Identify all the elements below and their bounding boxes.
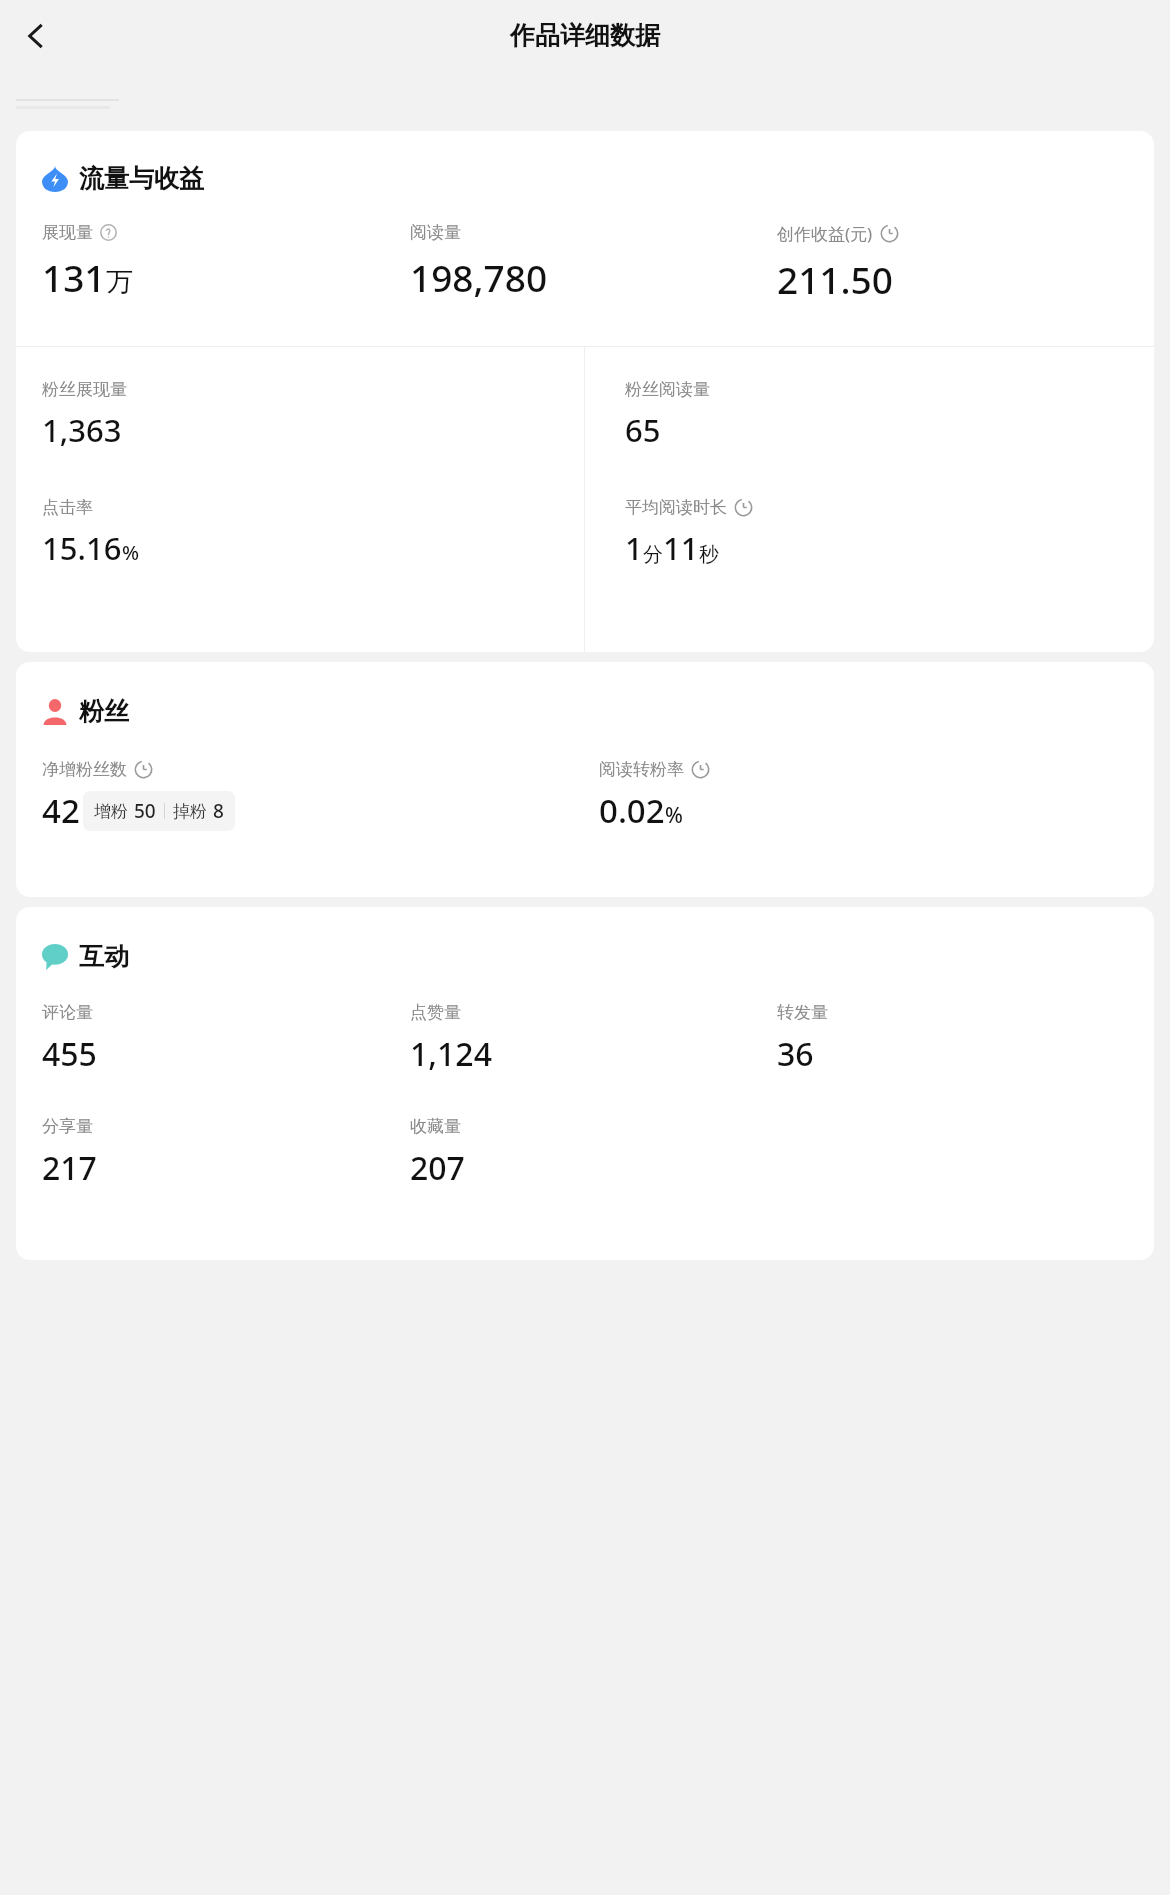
staticText: 收藏量 [410,1116,461,1137]
staticText: % [122,539,140,566]
staticText: 217 [42,1146,97,1190]
staticText: 1 [625,527,643,569]
staticText: 展现量 [42,222,93,243]
staticText: 创作收益(元) [777,222,873,245]
staticText: 作品详细数据 [510,20,660,51]
staticText: 平均阅读时长 [625,497,727,518]
staticText: 流量与收益 [79,163,204,194]
staticText: 粉丝阅读量 [625,379,710,400]
staticText: 掉粉 [173,801,207,822]
button[interactable]: Back [10,9,64,63]
staticText: 211.50 [777,254,893,304]
button[interactable]: 互动 [16,907,1154,1260]
staticText: 42 [42,788,80,833]
staticText: 分享量 [42,1116,93,1137]
staticText: 分 [643,542,663,567]
button[interactable]: 粉丝 [16,662,1154,897]
staticText: 1,363 [42,409,122,451]
staticText: 互动 [79,941,129,972]
staticText: 评论量 [42,1002,93,1023]
staticText: 万 [106,265,133,299]
staticText: 点赞量 [410,1002,461,1023]
staticText: % [665,801,683,830]
staticText: 207 [410,1146,465,1190]
staticText: 阅读转粉率 [599,759,684,780]
staticText: 增粉 [94,801,128,822]
staticText: 粉丝展现量 [42,379,127,400]
staticText: 455 [42,1032,97,1076]
staticText: 131 [42,252,106,302]
staticText: 阅读量 [410,222,461,243]
staticText: 点击率 [42,497,93,518]
staticText: 11 [663,527,699,569]
staticText: 净增粉丝数 [42,759,127,780]
staticText: 粉丝 [79,696,129,727]
staticText: 36 [777,1032,814,1076]
staticText: 8 [213,798,224,824]
staticText: 198,780 [410,252,548,302]
staticText: 0.02 [599,788,665,833]
staticText: 50 [134,798,156,824]
staticText: 秒 [699,542,719,567]
staticText: 15.16 [42,527,122,569]
staticText: 1,124 [410,1032,492,1076]
staticText: 65 [625,409,661,451]
button[interactable]: 流量与收益 [16,131,1154,652]
staticText: 转发量 [777,1002,828,1023]
